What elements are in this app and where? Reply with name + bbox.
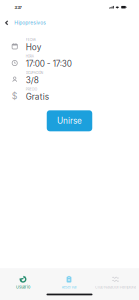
staticText: 3:37 [14,5,21,10]
staticText: OCUPACIÓN [26,71,43,75]
button[interactable]: Usuario [0,278,46,295]
staticText: PRECIO [26,87,37,91]
button[interactable]: Reservar [46,278,92,295]
staticText: Gratis [26,92,49,102]
staticText: 17:00 - 17:30 [26,59,72,69]
staticText: Club Natación Pamplona [95,285,136,289]
staticText: FECHA [26,38,36,42]
button[interactable]: Unirse [47,110,92,131]
staticText: 3/8 [26,75,39,85]
staticText: Unirse [57,116,82,126]
staticText: $ [12,91,18,101]
staticText: Usuario [16,285,30,289]
staticText: HORA [26,54,34,58]
staticText: Reservar [61,285,76,289]
staticText: Hoy [26,42,42,52]
staticText: Hipopresivos [14,20,46,26]
button[interactable]: Club Natación Pamplona [92,278,139,295]
button[interactable]: Back to Hipopresivos [0,16,52,29]
